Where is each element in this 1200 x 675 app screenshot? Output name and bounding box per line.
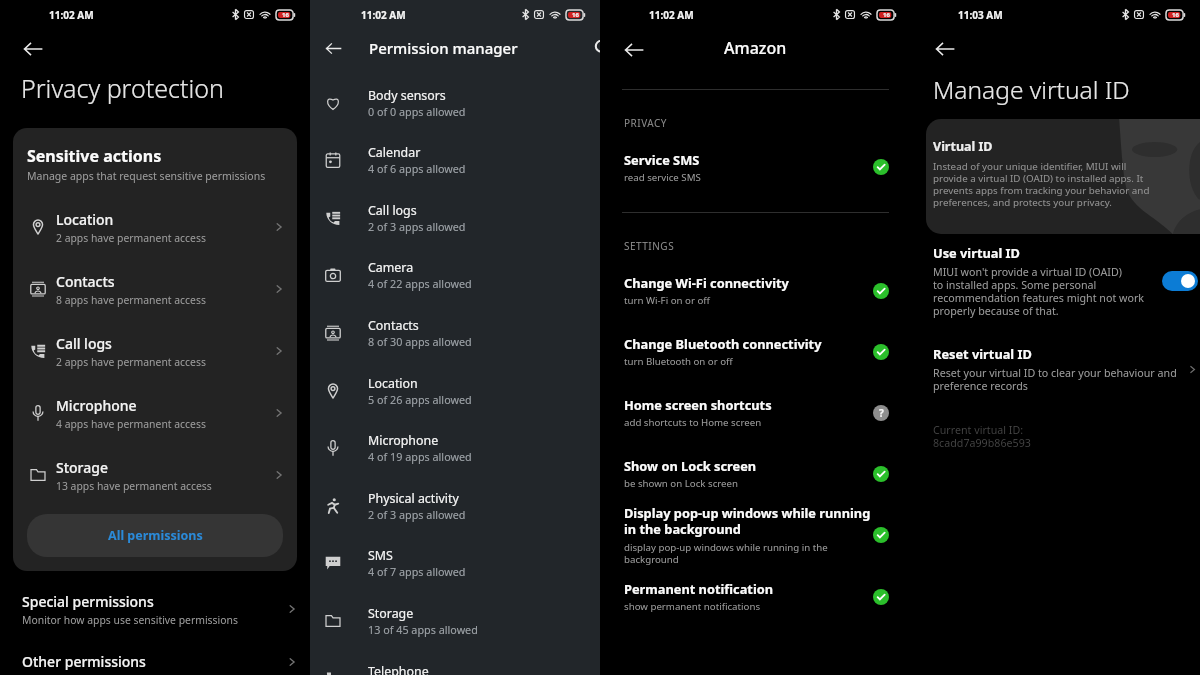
button[interactable]: Use virtual ID toggle <box>1162 271 1198 291</box>
button[interactable]: Telephone <box>310 650 600 675</box>
staticText: Body sensors <box>368 87 446 104</box>
button[interactable]: Display pop-up windows while running in … <box>600 504 911 566</box>
button[interactable]: Back <box>326 41 341 56</box>
staticText: Use virtual ID <box>933 244 1020 261</box>
button[interactable]: Location <box>13 196 297 258</box>
button[interactable]: Change Wi-Fi connectivity <box>600 260 911 321</box>
staticText: PRIVACY <box>624 116 667 130</box>
staticText: Manage apps that request sensitive permi… <box>27 169 266 183</box>
button[interactable]: Permanent notification <box>600 566 911 627</box>
other: Allowed <box>873 589 889 605</box>
staticText: be shown on Lock screen <box>624 477 739 490</box>
staticText: Show on Lock screen <box>624 457 757 474</box>
button[interactable]: Location <box>310 362 600 420</box>
staticText: Change Bluetooth connectivity <box>624 335 822 352</box>
staticText: Camera <box>368 259 414 276</box>
staticText: Contacts <box>56 272 115 291</box>
staticText: Privacy protection <box>21 71 224 105</box>
staticText: Microphone <box>368 432 439 449</box>
staticText: Manage virtual ID <box>933 73 1130 106</box>
button[interactable]: Physical activity <box>310 477 600 535</box>
staticText: Storage <box>56 458 108 477</box>
button[interactable]: Back <box>24 40 42 58</box>
button[interactable]: Call logs <box>310 189 600 247</box>
staticText: 4 of 6 apps allowed <box>368 161 466 176</box>
staticText: All permissions <box>108 527 203 544</box>
staticText: Location <box>56 210 114 229</box>
staticText: ? <box>879 406 884 420</box>
button[interactable]: All permissions <box>27 514 283 557</box>
button[interactable]: Microphone <box>13 382 297 444</box>
staticText: turn Wi-Fi on or off <box>624 294 710 307</box>
staticText: Call logs <box>368 202 417 219</box>
staticText: 0 of 0 apps allowed <box>368 104 466 119</box>
button[interactable]: Contacts <box>310 304 600 362</box>
staticText: Change Wi-Fi connectivity <box>624 274 789 291</box>
staticText: show permanent notifications <box>624 600 761 613</box>
button[interactable]: Other permissions <box>0 648 310 675</box>
button[interactable]: Storage <box>13 444 297 506</box>
staticText: Reset your virtual ID to clear your beha… <box>933 366 1177 393</box>
button[interactable]: Back <box>625 41 643 59</box>
staticText: Home screen shortcuts <box>624 396 772 413</box>
staticText: Service SMS <box>624 151 700 168</box>
staticText: 4 of 22 apps allowed <box>368 276 472 291</box>
staticText: turn Bluetooth on or off <box>624 355 733 368</box>
button[interactable]: Change Bluetooth connectivity <box>600 321 911 382</box>
staticText: 2 of 3 apps allowed <box>368 219 466 234</box>
staticText: 11:02 AM <box>49 8 94 22</box>
staticText: Display pop-up windows while running in … <box>624 504 871 538</box>
button[interactable]: Storage <box>310 592 600 650</box>
staticText: Physical activity <box>368 490 459 507</box>
button[interactable]: Calendar <box>310 131 600 189</box>
staticText: Sensitive actions <box>27 145 162 167</box>
other: Ask <box>873 405 889 421</box>
button[interactable]: Special permissions <box>0 585 310 633</box>
staticText: Telephone <box>368 663 429 675</box>
staticText: Virtual ID <box>933 138 993 155</box>
staticText: 2 apps have permanent access <box>56 355 206 369</box>
staticText: SETTINGS <box>624 239 675 253</box>
button[interactable]: Home screen shortcuts <box>600 382 911 443</box>
staticText: Permission manager <box>369 38 518 58</box>
staticText: Microphone <box>56 396 137 415</box>
staticText: 13 apps have permanent access <box>56 479 212 493</box>
staticText: 16 <box>1172 11 1179 19</box>
button[interactable]: Call logs <box>13 320 297 382</box>
button[interactable]: Reset virtual ID <box>911 345 1200 393</box>
button[interactable]: Camera <box>310 246 600 304</box>
staticText: Calendar <box>368 144 421 161</box>
staticText: 4 apps have permanent access <box>56 417 206 431</box>
button[interactable]: Use virtual ID <box>911 244 1200 318</box>
staticText: Monitor how apps use sensitive permissio… <box>22 613 238 627</box>
staticText: read service SMS <box>624 171 701 184</box>
button[interactable]: Body sensors <box>310 74 600 132</box>
staticText: Other permissions <box>22 652 146 671</box>
button[interactable]: Show on Lock screen <box>600 443 911 504</box>
staticText: 16 <box>572 11 579 19</box>
other: Allowed <box>873 527 889 543</box>
button[interactable]: Search <box>594 39 612 57</box>
staticText: 11:03 AM <box>958 8 1003 22</box>
staticText: Call logs <box>56 334 112 353</box>
staticText: add shortcuts to Home screen <box>624 416 762 429</box>
staticText: Instead of your unique identifier, MIUI … <box>933 160 1150 209</box>
staticText: 13 of 45 apps allowed <box>368 622 478 637</box>
staticText: 11:02 AM <box>361 8 406 22</box>
staticText: 4 of 19 apps allowed <box>368 449 472 464</box>
other: Allowed <box>873 466 889 482</box>
button[interactable]: Microphone <box>310 419 600 477</box>
staticText: Reset virtual ID <box>933 345 1032 362</box>
staticText: 16 <box>282 11 289 19</box>
button[interactable]: Back <box>936 40 954 58</box>
staticText: 5 of 26 apps allowed <box>368 392 472 407</box>
staticText: Contacts <box>368 317 419 334</box>
button[interactable]: SMS <box>310 534 600 592</box>
other: Allowed <box>873 283 889 299</box>
staticText: 2 apps have permanent access <box>56 231 206 245</box>
staticText: 16 <box>883 11 890 19</box>
staticText: SMS <box>368 547 393 564</box>
staticText: Amazon <box>724 37 787 59</box>
button[interactable]: Service SMS <box>600 147 911 187</box>
button[interactable]: Contacts <box>13 258 297 320</box>
